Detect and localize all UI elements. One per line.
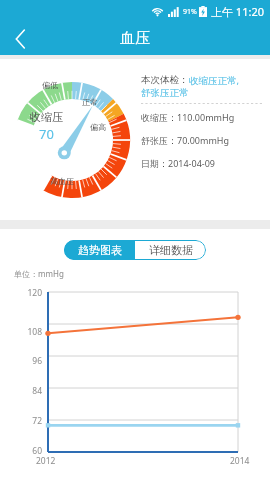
staticText: 日期：2014-04-09 — [141, 157, 215, 169]
staticText: 高血压 — [50, 176, 74, 186]
button[interactable]: Back — [0, 22, 40, 55]
staticText: 舒张压正常 — [141, 87, 189, 99]
staticText: 120 — [27, 287, 42, 299]
staticText: 本次体检： — [141, 74, 189, 86]
staticText: 108 — [27, 326, 42, 338]
staticText: 单位：mmHg — [14, 268, 64, 279]
staticText: 2014 — [230, 455, 250, 467]
button[interactable]: 趋势图表 — [64, 240, 135, 260]
staticText: 72 — [32, 415, 42, 427]
staticText: 偏高 — [90, 122, 106, 132]
staticText: 偏低 — [42, 80, 58, 90]
staticText: 详细数据 — [149, 243, 193, 257]
staticText: 收缩压正常, — [189, 74, 240, 87]
staticText: 收缩压：110.00mmHg — [141, 111, 235, 123]
staticText: 70 — [39, 125, 54, 143]
staticText: 91% — [183, 7, 197, 17]
staticText: 血压 — [120, 29, 150, 48]
staticText: 84 — [32, 385, 42, 397]
staticText: 收缩压 — [30, 110, 63, 124]
staticText: 正常 — [82, 97, 98, 107]
button[interactable]: 详细数据 — [135, 240, 206, 260]
staticText: 上午 11:20 — [211, 4, 264, 19]
staticText: 60 — [32, 445, 42, 457]
staticText: 2012 — [36, 455, 56, 467]
staticText: 舒张压：70.00mmHg — [141, 134, 230, 146]
staticText: 趋势图表 — [78, 243, 122, 257]
staticText: 96 — [32, 355, 42, 367]
